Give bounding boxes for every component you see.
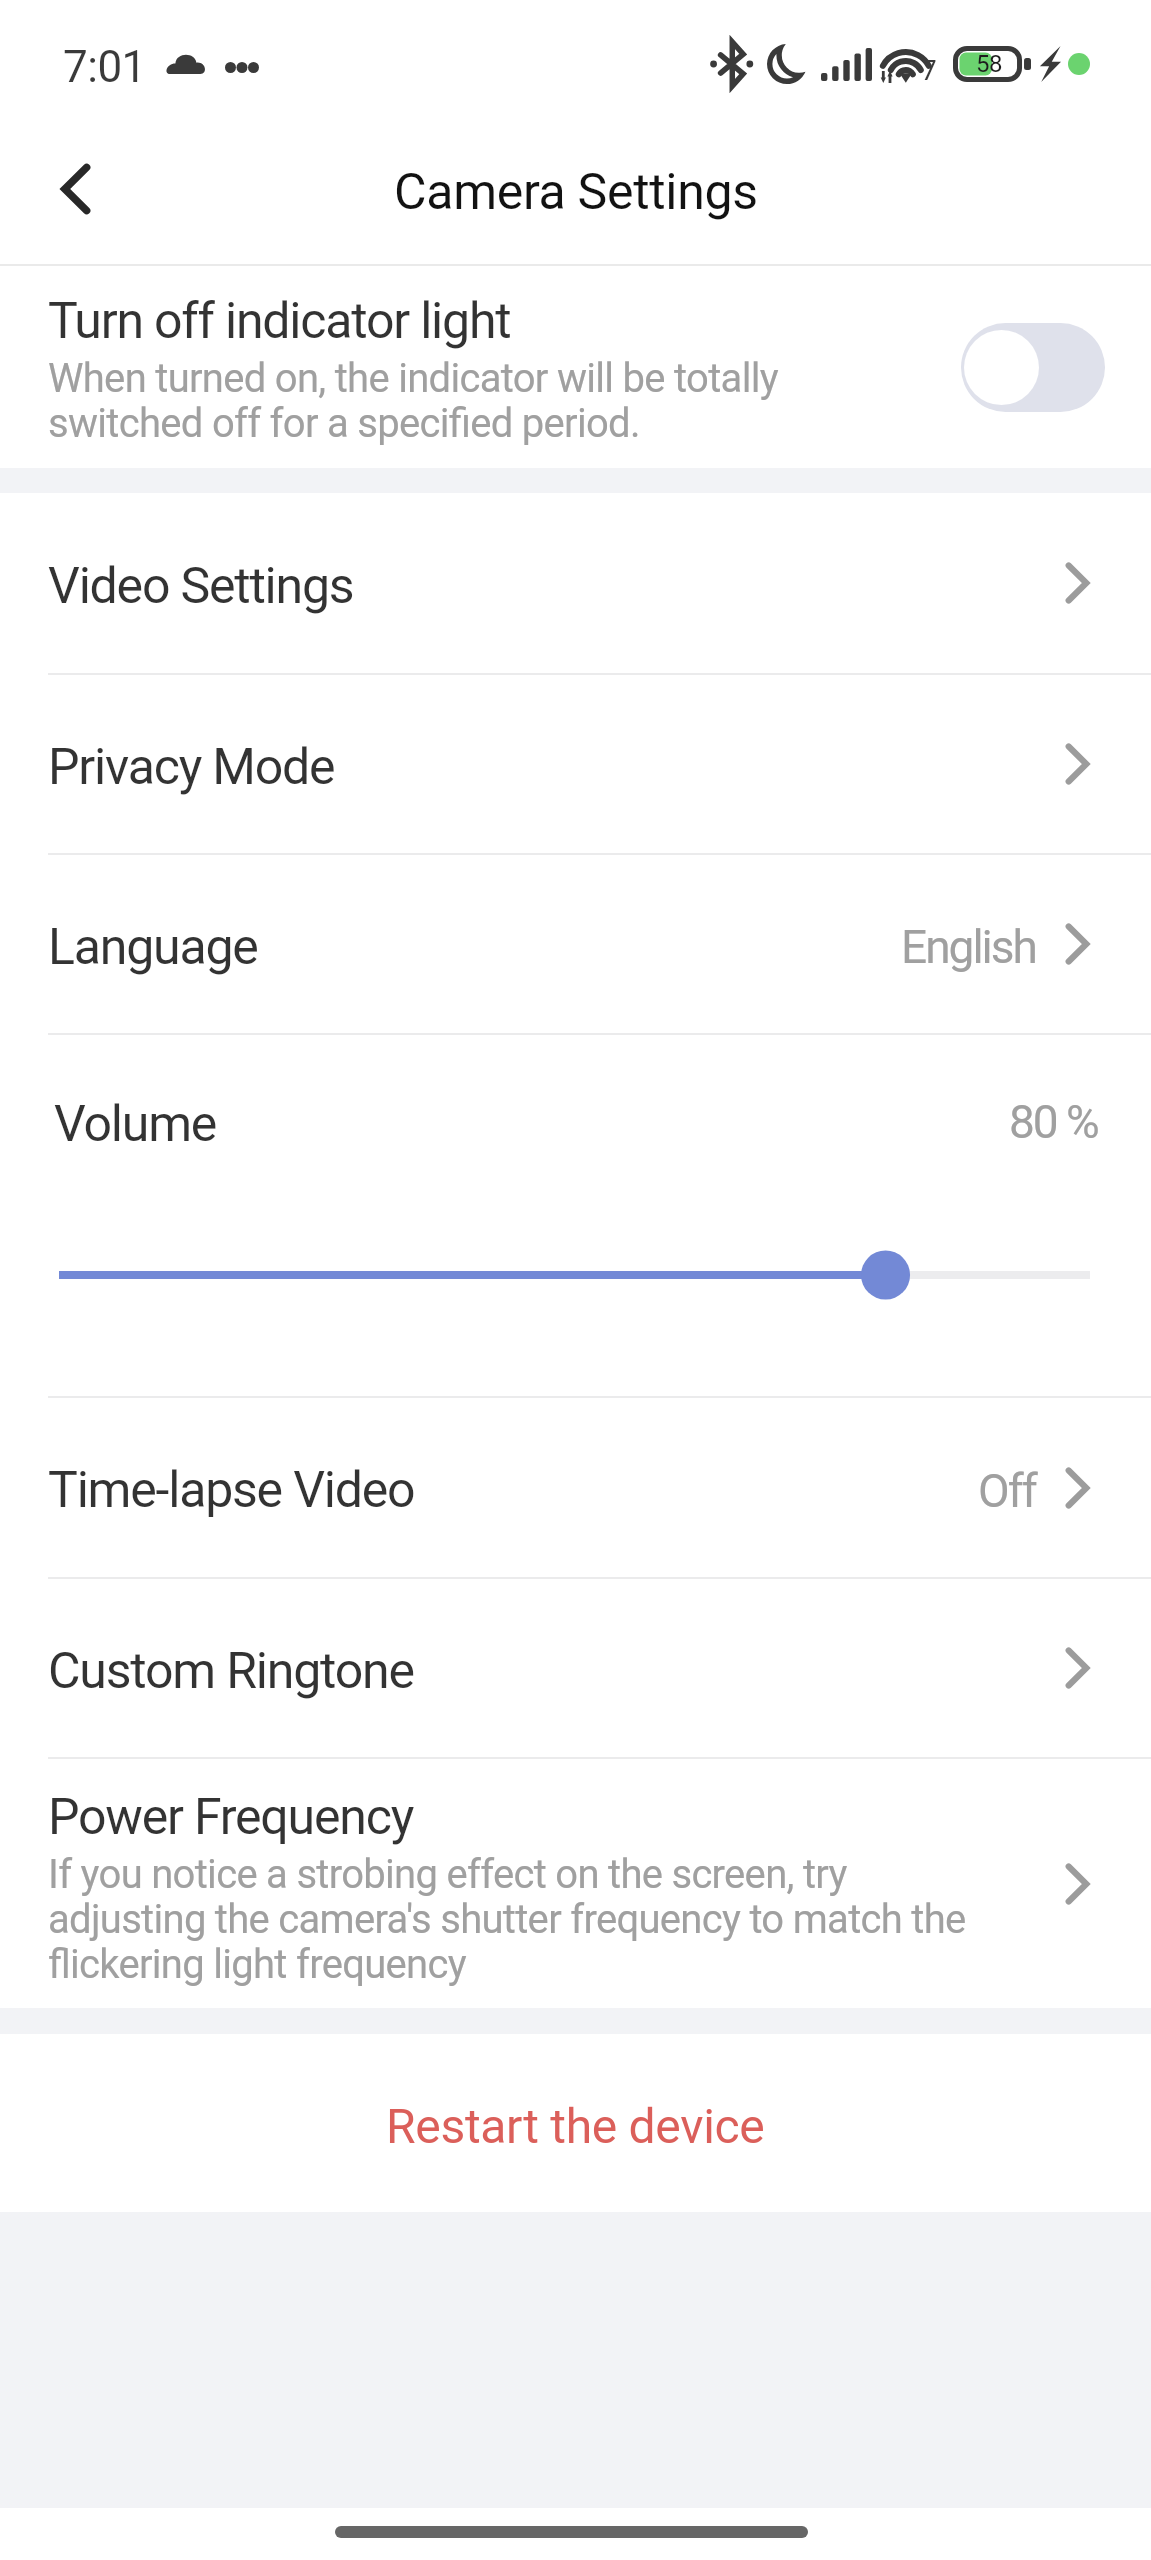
staticText: Turn off indicator light [48,292,511,351]
button[interactable]: Volume [0,1035,1151,1396]
staticText: Restart the device [386,2098,765,2154]
staticText: Custom Ringtone [48,1642,1067,1701]
staticText: Language [48,918,901,977]
button[interactable]: Language [0,855,1151,1033]
button[interactable]: Turn off indicator light [0,266,1151,468]
staticText: 7:01 [63,41,146,93]
button[interactable]: Restart the device [0,2034,1151,2212]
staticText: Privacy Mode [48,738,1067,797]
button[interactable]: Custom Ringtone [0,1579,1151,1757]
staticText: Camera Settings [394,163,758,222]
staticText: If you notice a strobing effect on the s… [48,1851,991,1987]
button[interactable]: Time-lapse Video [0,1398,1151,1577]
staticText: Time-lapse Video [48,1461,978,1520]
staticText: 80 % [1009,1095,1098,1149]
staticText: 58 [976,50,1002,78]
button[interactable]: Privacy Mode [0,675,1151,853]
staticText: English [901,920,1036,974]
button[interactable]: Back [0,128,152,264]
staticText: Off [978,1464,1036,1518]
staticText: 7 [921,54,937,87]
staticText: Volume [54,1095,1009,1154]
staticText: Power Frequency [48,1788,414,1847]
button[interactable]: Turn off indicator light toggle [961,323,1105,412]
button[interactable]: Video Settings [0,493,1151,673]
staticText: Video Settings [48,557,1067,616]
button[interactable]: Power Frequency [0,1759,1151,2008]
staticText: When turned on, the indicator will be to… [48,355,851,446]
